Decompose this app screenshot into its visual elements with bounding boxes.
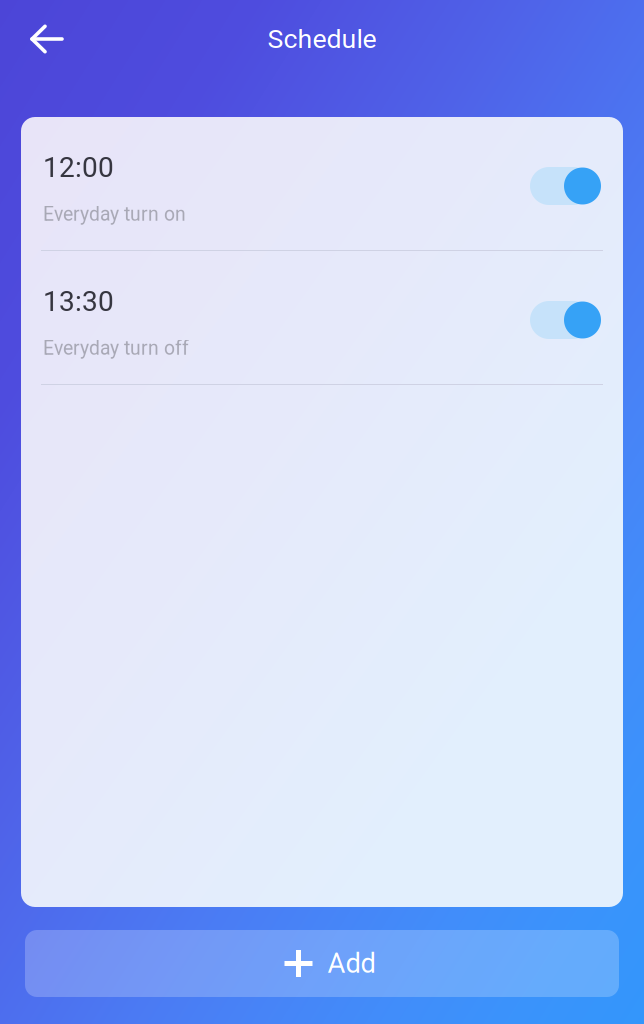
button[interactable]: 12:00 xyxy=(21,117,623,251)
staticText: 13:30 xyxy=(43,285,114,318)
button[interactable]: 13:30 xyxy=(21,251,623,385)
staticText: Schedule xyxy=(267,23,376,55)
staticText: Everyday turn on xyxy=(43,203,186,225)
button[interactable]: Back xyxy=(0,10,81,67)
button[interactable]: Add xyxy=(25,930,619,997)
staticText: Add xyxy=(327,947,375,979)
staticText: Everyday turn off xyxy=(43,337,189,359)
staticText: 12:00 xyxy=(43,151,114,184)
